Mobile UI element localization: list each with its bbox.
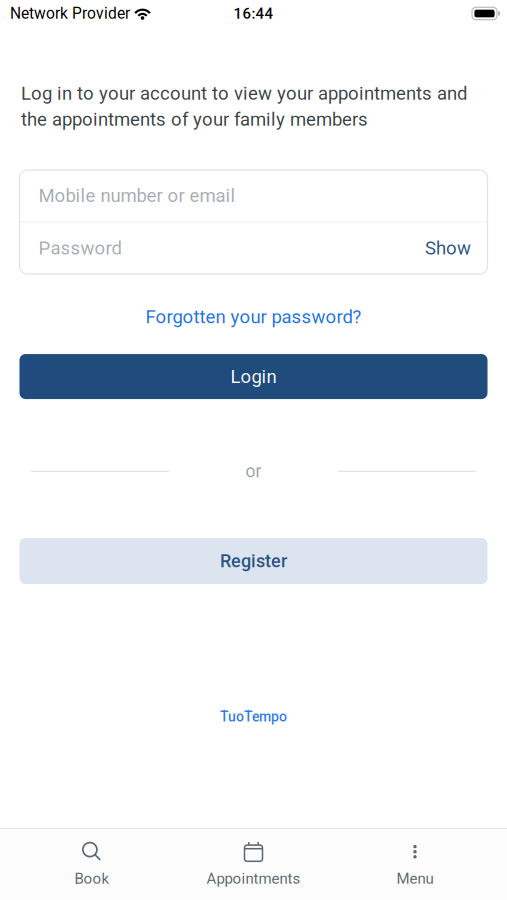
staticText: Book	[74, 870, 109, 887]
button[interactable]: Book	[0, 842, 184, 887]
staticText: or	[245, 461, 261, 482]
staticText: Network Provider	[10, 4, 130, 23]
staticText: Appointments	[206, 870, 300, 887]
button[interactable]: Login	[19, 354, 487, 399]
button[interactable]: Register	[19, 538, 487, 584]
staticText: Mobile number or email	[38, 185, 235, 207]
button[interactable]: TuoTempo	[220, 709, 287, 725]
button[interactable]: Show	[425, 237, 471, 259]
button[interactable]: Forgotten your password?	[145, 306, 361, 328]
staticText: Menu	[396, 870, 433, 887]
staticText: Register	[220, 550, 287, 572]
staticText: Login	[230, 366, 276, 387]
staticText: 16:44	[233, 5, 273, 22]
staticText: Forgotten your password?	[145, 306, 361, 328]
staticText: the appointments of your family members	[21, 109, 368, 130]
staticText: Log in to your account to view your appo…	[21, 83, 467, 104]
staticText: Show	[425, 237, 471, 259]
staticText: TuoTempo	[220, 709, 287, 725]
staticText: Password	[38, 237, 121, 259]
button[interactable]: Appointments	[184, 842, 323, 887]
button[interactable]: Menu	[323, 842, 507, 887]
